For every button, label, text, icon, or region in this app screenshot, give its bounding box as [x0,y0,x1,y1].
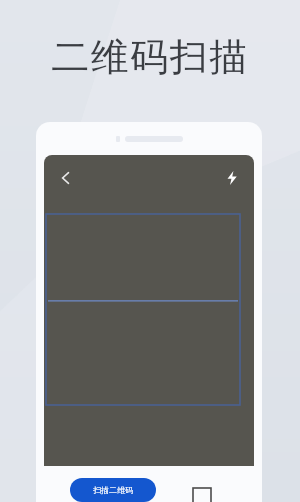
button[interactable]: Flash [218,164,246,192]
button[interactable]: Back [52,164,80,192]
button[interactable]: 扫描二维码 [70,478,156,502]
staticText: 扫描二维码 [93,485,133,495]
staticText: 二维码扫描 [51,33,249,81]
button[interactable]: Album [191,486,213,502]
